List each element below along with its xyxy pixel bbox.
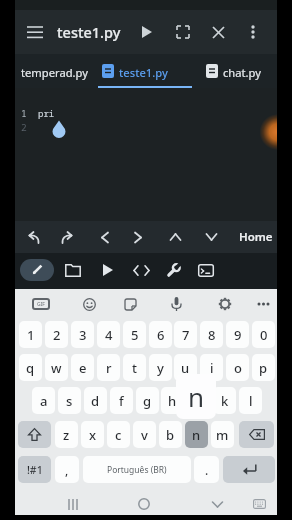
button[interactable]: a (32, 387, 55, 414)
button[interactable] (223, 456, 275, 483)
button[interactable]: 5 (123, 321, 146, 348)
staticText: 5 (131, 326, 139, 344)
button[interactable]: 1 (19, 321, 42, 348)
button[interactable]: q (19, 354, 42, 381)
button[interactable]: g (136, 387, 159, 414)
staticText: q (26, 359, 35, 377)
staticText: GIF (37, 301, 45, 308)
staticText: n (188, 379, 205, 414)
button[interactable]: Português (BR) (83, 456, 191, 483)
staticText: e (79, 359, 87, 377)
button[interactable]: j (187, 387, 210, 414)
button[interactable] (210, 24, 227, 40)
button[interactable]: d (84, 387, 107, 414)
button[interactable]: z (55, 421, 78, 448)
button[interactable]: chat.py (200, 54, 277, 88)
staticText: chat.py (223, 65, 261, 80)
button[interactable]: , (55, 456, 79, 483)
staticText: 1 (27, 326, 35, 344)
staticText: f (119, 392, 124, 410)
button[interactable]: Home (235, 223, 277, 251)
staticText: l (249, 392, 253, 410)
button[interactable] (82, 297, 96, 311)
button[interactable] (128, 225, 148, 249)
button[interactable] (217, 296, 233, 312)
button[interactable]: n (185, 421, 208, 448)
staticText: 2 (53, 326, 61, 344)
button[interactable] (162, 258, 184, 282)
button[interactable]: p (252, 354, 275, 381)
button[interactable]: GIF (32, 298, 50, 310)
staticText: 3 (79, 326, 87, 344)
button[interactable]: temperad.py (15, 54, 98, 88)
button[interactable]: i (200, 354, 223, 381)
button[interactable] (174, 24, 191, 40)
button[interactable]: 4 (97, 321, 120, 348)
staticText: x (89, 426, 97, 444)
staticText: teste1.py (57, 22, 121, 42)
button[interactable]: u (174, 354, 197, 381)
button[interactable]: w (45, 354, 68, 381)
button[interactable] (18, 421, 51, 448)
button[interactable]: s (58, 387, 81, 414)
button[interactable] (66, 497, 80, 511)
button[interactable]: m (211, 421, 234, 448)
button[interactable]: y (149, 354, 172, 381)
button[interactable]: t (123, 354, 146, 381)
button[interactable]: 9 (226, 321, 249, 348)
button[interactable]: b (159, 421, 182, 448)
button[interactable]: r (97, 354, 120, 381)
button[interactable] (62, 259, 84, 281)
button[interactable]: k (213, 387, 236, 414)
button[interactable] (201, 225, 221, 249)
button[interactable]: h (161, 387, 184, 414)
button[interactable]: 6 (149, 321, 172, 348)
button[interactable] (165, 225, 185, 249)
button[interactable]: c (107, 421, 130, 448)
staticText: teste1.py (119, 65, 168, 80)
button[interactable]: o (226, 354, 249, 381)
button[interactable]: . (194, 456, 219, 483)
button[interactable] (55, 225, 80, 249)
button[interactable] (95, 225, 115, 249)
button[interactable] (194, 259, 218, 281)
button[interactable]: teste1.py (98, 54, 192, 88)
staticText: . (205, 462, 209, 478)
staticText: , (65, 462, 69, 478)
button[interactable]: !#1 (18, 456, 51, 483)
staticText: n (192, 426, 201, 444)
button[interactable] (20, 259, 54, 281)
staticText: Home (239, 229, 273, 245)
staticText: a (40, 392, 48, 410)
button[interactable] (239, 421, 274, 448)
button[interactable]: 0 (252, 321, 275, 348)
button[interactable]: l (239, 387, 262, 414)
button[interactable] (123, 297, 137, 311)
button[interactable] (129, 259, 153, 281)
button[interactable] (246, 24, 259, 40)
button[interactable]: 7 (174, 321, 197, 348)
button[interactable] (138, 24, 156, 40)
button[interactable]: 8 (200, 321, 223, 348)
button[interactable]: e (71, 354, 94, 381)
button[interactable]: 2 (45, 321, 68, 348)
button[interactable]: f (110, 387, 133, 414)
staticText: s (66, 392, 73, 410)
staticText: 1 (21, 107, 27, 120)
button[interactable] (169, 296, 183, 312)
staticText: r (106, 359, 112, 377)
staticText: 7 (182, 326, 190, 344)
button[interactable]: 3 (71, 321, 94, 348)
button[interactable] (137, 497, 151, 511)
button[interactable] (97, 259, 119, 281)
button[interactable]: x (81, 421, 104, 448)
button[interactable]: v (133, 421, 156, 448)
button[interactable] (255, 300, 271, 308)
staticText: 6 (157, 326, 165, 344)
staticText: z (63, 426, 70, 444)
button[interactable] (23, 25, 47, 40)
button[interactable] (210, 499, 224, 509)
button[interactable] (20, 225, 45, 249)
button[interactable] (252, 498, 266, 510)
staticText: j (197, 392, 201, 410)
